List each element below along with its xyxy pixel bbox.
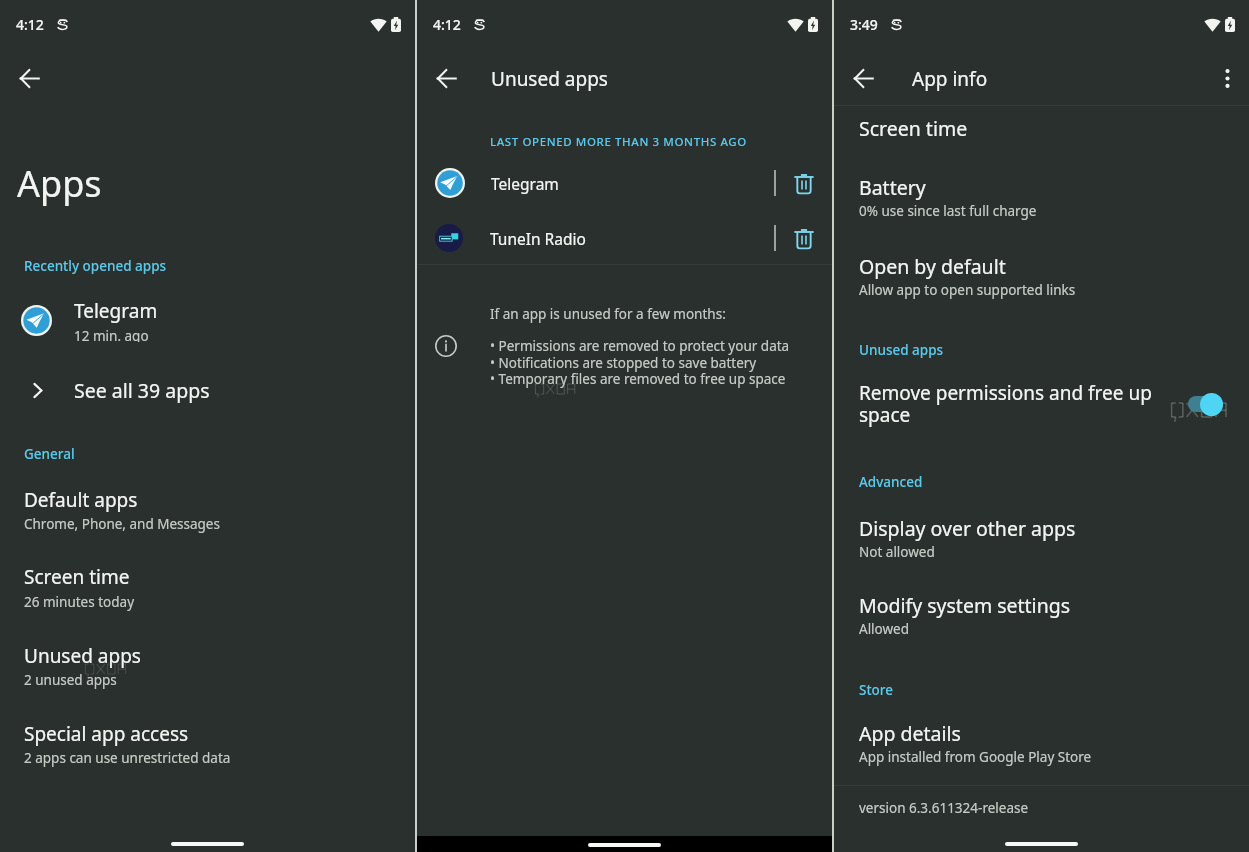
staticText: 0% use since last full charge xyxy=(859,202,1037,220)
staticText: Apps xyxy=(17,159,102,208)
button[interactable]: Default apps xyxy=(0,487,415,533)
staticText: Default apps xyxy=(24,487,138,513)
staticText: Open by default xyxy=(859,253,1006,280)
staticText: Unused apps xyxy=(491,66,608,92)
button[interactable]: Telegram xyxy=(417,156,832,210)
button[interactable]: Screen time xyxy=(0,564,415,611)
staticText: 3:49 xyxy=(850,15,878,34)
staticText: 26 minutes today xyxy=(24,593,135,611)
staticText: Advanced xyxy=(859,473,923,491)
staticText: Not allowed xyxy=(859,543,935,561)
staticText: Allow app to open supported links xyxy=(859,281,1076,299)
staticText: Telegram xyxy=(491,173,774,194)
staticText: Chrome, Phone, and Messages xyxy=(24,515,220,533)
staticText: Screen time xyxy=(859,115,968,142)
staticText: Unused apps xyxy=(859,341,944,359)
staticText: Remove permissions and free up space xyxy=(859,380,1172,428)
staticText: LAST OPENED MORE THAN 3 MONTHS AGO xyxy=(490,134,747,150)
button[interactable]: Battery xyxy=(834,174,1249,220)
staticText: Unused apps xyxy=(24,643,141,669)
staticText: App info xyxy=(912,66,988,92)
button[interactable]: Open by default xyxy=(834,253,1249,299)
staticText: See all 39 apps xyxy=(74,377,210,404)
staticText: 12 min. ago xyxy=(74,327,149,342)
staticText: Battery xyxy=(859,174,926,201)
staticText: Display over other apps xyxy=(859,515,1076,542)
button[interactable]: Back xyxy=(843,58,883,98)
staticText: 4:12 xyxy=(16,15,44,34)
staticText: Screen time xyxy=(24,564,130,590)
staticText: 4:12 xyxy=(433,15,461,34)
staticText: • Permissions are removed to protect you… xyxy=(490,337,790,388)
button[interactable]: Unused apps xyxy=(0,643,415,689)
button[interactable]: See all 39 apps xyxy=(0,372,415,408)
button[interactable]: Display over other apps xyxy=(834,515,1249,561)
staticText: App installed from Google Play Store xyxy=(859,748,1092,766)
staticText: Modify system settings xyxy=(859,592,1071,619)
button[interactable]: Back xyxy=(426,58,466,98)
button[interactable]: More options xyxy=(1207,58,1247,98)
button[interactable]: Special app access xyxy=(0,721,415,767)
button[interactable]: Modify system settings xyxy=(834,592,1249,638)
button[interactable]: Telegram xyxy=(0,298,415,342)
button[interactable]: TuneIn Radio xyxy=(417,211,832,265)
staticText: Telegram xyxy=(74,298,158,324)
staticText: General xyxy=(24,445,75,463)
button[interactable]: Remove permissions and free up space xyxy=(834,380,1249,428)
staticText: TuneIn Radio xyxy=(490,228,774,249)
staticText: If an app is unused for a few months: xyxy=(490,305,726,323)
button[interactable]: Delete TuneIn Radio xyxy=(785,219,823,257)
button[interactable]: Screen time xyxy=(834,115,1249,142)
button[interactable]: App details xyxy=(834,720,1249,766)
staticText: Recently opened apps xyxy=(24,257,167,275)
staticText: Store xyxy=(859,681,894,699)
staticText: App details xyxy=(859,720,961,747)
button[interactable]: Delete Telegram xyxy=(785,164,823,202)
staticText: Allowed xyxy=(859,620,910,638)
staticText: version 6.3.611324-release xyxy=(859,799,1029,817)
staticText: 2 apps can use unrestricted data xyxy=(24,749,231,767)
button[interactable]: Remove permissions toggle xyxy=(1178,386,1234,422)
staticText: 2 unused apps xyxy=(24,671,117,689)
button[interactable]: Back xyxy=(9,58,49,98)
staticText: Special app access xyxy=(24,721,189,747)
